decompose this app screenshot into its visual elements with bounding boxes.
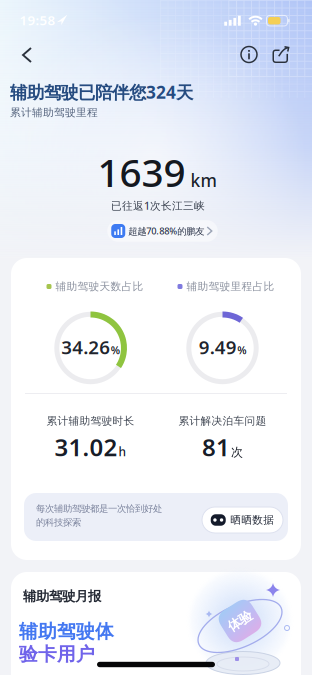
staticText: 19:58 — [19, 11, 55, 29]
staticText: 9.49 — [199, 335, 237, 359]
staticText: 晒晒数据 — [230, 513, 274, 526]
staticText: 验卡用户 — [19, 643, 95, 666]
staticText: h — [118, 444, 126, 460]
button[interactable]: 超越70.88%的鹏友 — [107, 220, 218, 242]
staticText: 累计辅助驾驶时长 — [46, 414, 134, 427]
staticText: 每次辅助驾驶都是一次恰到好处 — [36, 503, 162, 514]
staticText: km — [190, 169, 216, 192]
staticText: 辅助驾驶体 — [19, 620, 114, 643]
button[interactable]: 辅助驾驶月报 — [11, 572, 301, 675]
staticText: 辅助驾驶天数占比 — [55, 280, 143, 293]
staticText: 31.02 — [54, 431, 117, 463]
button[interactable]: 返回 — [9, 37, 45, 73]
staticText: 辅助驾驶已陪伴您324天 — [10, 80, 193, 103]
staticText: 81 — [202, 431, 230, 463]
button[interactable]: 信息 — [233, 36, 265, 72]
staticText: 1639 — [97, 146, 185, 198]
button[interactable]: 分享 — [264, 36, 298, 72]
button[interactable]: 晒晒数据 — [202, 507, 283, 533]
staticText: 34.26 — [61, 335, 110, 359]
staticText: 超越70.88%的鹏友 — [128, 225, 204, 237]
staticText: 体验 — [227, 613, 253, 629]
staticText: 次 — [231, 445, 243, 460]
staticText: 累计解决泊车问题 — [178, 414, 266, 427]
staticText: 辅助驾驶里程占比 — [186, 280, 274, 293]
staticText: 已往返1次长江三峡 — [111, 198, 205, 213]
staticText: % — [111, 343, 120, 357]
staticText: % — [237, 343, 246, 357]
staticText: 的科技探索 — [36, 517, 81, 528]
staticText: 辅助驾驶月报 — [23, 588, 101, 604]
staticText: 累计辅助驾驶里程 — [10, 106, 98, 119]
